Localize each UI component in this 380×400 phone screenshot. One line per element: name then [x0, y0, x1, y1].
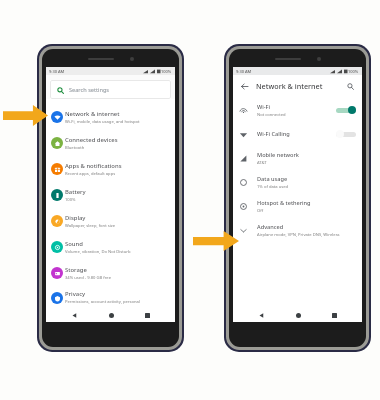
button[interactable]: Storage [46, 260, 175, 286]
staticText: Connected devices [65, 136, 118, 144]
staticText: Recent apps, default apps [65, 171, 116, 177]
button[interactable]: Apps & notifications [46, 156, 175, 182]
staticText: 9:30 AM [236, 69, 252, 74]
staticText: Volume, vibration, Do Not Disturb [65, 249, 131, 255]
button[interactable]: Recents [326, 309, 342, 322]
staticText: Not connected [257, 112, 286, 118]
button[interactable]: Back [253, 309, 269, 322]
staticText: 100% [65, 197, 76, 203]
button[interactable]: Home [290, 309, 306, 322]
staticText: Airplane mode, VPN, Private DNS, Wireles… [257, 232, 340, 238]
staticText: Display [65, 214, 86, 222]
button[interactable]: Display [46, 208, 175, 234]
staticText: 1% of data used [257, 184, 289, 190]
staticText: Wi-Fi [257, 103, 271, 111]
staticText: Wi-Fi, mobile, data usage, and hotspot [65, 119, 140, 125]
staticText: Battery [65, 188, 86, 196]
staticText: Sound [65, 240, 83, 248]
button[interactable]: Battery [46, 182, 175, 208]
button[interactable]: Wi-Fi [233, 98, 362, 122]
staticText: Network & internet [256, 81, 323, 91]
button[interactable]: Network & internet [46, 104, 175, 130]
button[interactable]: On [336, 105, 356, 115]
button[interactable]: Back [66, 309, 82, 322]
staticText: Search settings [69, 86, 110, 94]
button[interactable]: Back [238, 80, 250, 92]
staticText: 34% used - 9.80 GB free [65, 275, 111, 281]
staticText: Bluetooth [65, 145, 85, 151]
button[interactable]: Advanced [233, 218, 362, 242]
button[interactable]: Home [103, 309, 119, 322]
button[interactable]: Search settings [50, 80, 171, 99]
button[interactable]: Off [336, 129, 356, 139]
staticText: Privacy [65, 290, 86, 298]
staticText: Storage [65, 266, 87, 274]
staticText: Apps & notifications [65, 162, 122, 170]
button[interactable]: Hotspot & tethering [233, 194, 362, 218]
staticText: 100% [348, 69, 359, 74]
button[interactable]: Connected devices [46, 130, 175, 156]
staticText: 9:30 AM [49, 69, 65, 74]
staticText: AT&T [257, 160, 267, 166]
button[interactable]: Search [344, 80, 356, 92]
button[interactable]: Recents [139, 309, 155, 322]
staticText: Off [257, 208, 264, 214]
button[interactable]: Wi-Fi Calling [233, 122, 362, 146]
button[interactable]: Mobile network [233, 146, 362, 170]
staticText: Advanced [257, 223, 284, 231]
staticText: Wi-Fi Calling [257, 130, 290, 138]
button[interactable]: Sound [46, 234, 175, 260]
staticText: Wallpaper, sleep, font size [65, 223, 116, 229]
staticText: Permissions, account activity, personal [65, 299, 140, 305]
staticText: Mobile network [257, 151, 299, 159]
staticText: Data usage [257, 175, 288, 183]
staticText: Network & internet [65, 110, 120, 118]
button[interactable]: Data usage [233, 170, 362, 194]
staticText: Hotspot & tethering [257, 199, 311, 207]
staticText: 100% [161, 69, 172, 74]
button[interactable]: Privacy [46, 286, 175, 309]
